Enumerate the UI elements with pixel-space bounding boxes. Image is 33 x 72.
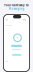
- staticText: Messaging: [8, 7, 24, 10]
- staticText: Your Gateway to: [4, 3, 29, 7]
